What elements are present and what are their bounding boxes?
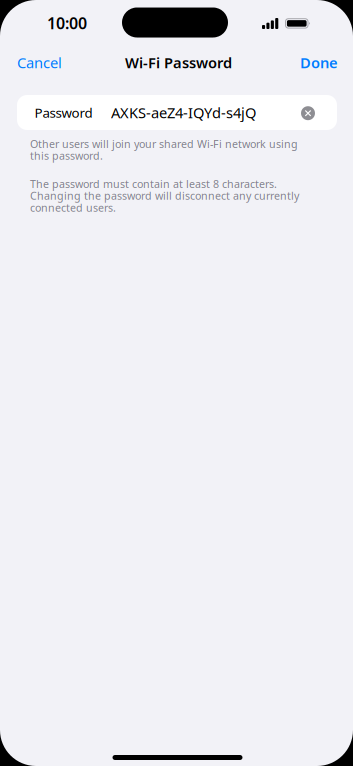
button[interactable]: Cancel: [17, 45, 67, 79]
staticText: connected users.: [30, 200, 116, 215]
button[interactable]: Done: [288, 45, 338, 79]
staticText: Cancel: [17, 53, 62, 72]
staticText: Password: [34, 104, 92, 121]
staticText: Other users will join your shared Wi-Fi …: [30, 137, 298, 151]
staticText: 10:00: [47, 12, 87, 34]
button[interactable]: Clear text: [295, 95, 321, 130]
staticText: this password.: [30, 149, 103, 163]
staticText: Done: [300, 53, 338, 72]
staticText: Wi-Fi Password: [125, 53, 232, 72]
button[interactable]: Password: [17, 95, 337, 130]
staticText: Changing the password will disconnect an…: [30, 189, 299, 203]
staticText: AXKS-aeZ4-IQYd-s4jQ: [111, 103, 256, 122]
staticText: The password must contain at least 8 cha…: [30, 177, 277, 191]
